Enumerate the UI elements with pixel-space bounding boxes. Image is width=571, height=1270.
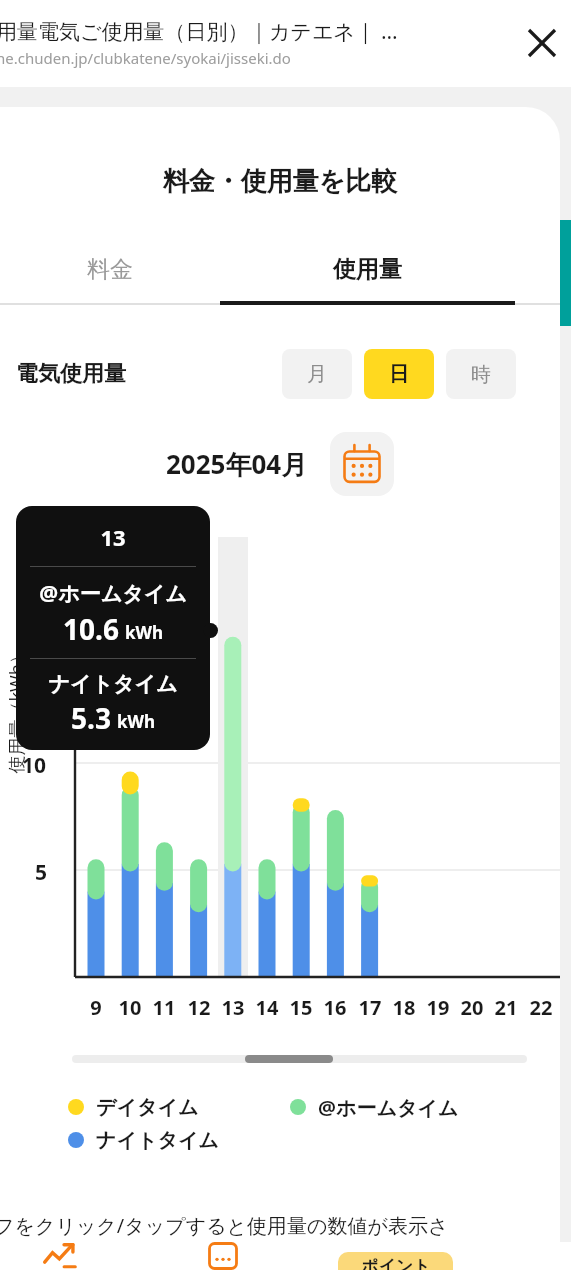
staticText: kWh [117, 710, 156, 733]
staticText: ne.chuden.jp/clubkatene/syokai/jisseki.d… [0, 48, 291, 68]
staticText: ポイント [361, 1256, 431, 1270]
staticText: 13 [219, 994, 247, 1021]
staticText: 15 [287, 994, 315, 1021]
staticText: 使用量（kWh） [3, 645, 28, 773]
staticText: ナイトタイム [96, 1128, 219, 1153]
staticText: 2025年04月 [166, 446, 308, 482]
staticText: 時 [471, 362, 491, 387]
staticText: 21 [492, 994, 520, 1021]
staticText: 13 [16, 522, 210, 552]
staticText: ナイトタイム [16, 671, 210, 697]
staticText: 9 [82, 994, 110, 1021]
staticText: kWh [125, 621, 164, 644]
button[interactable]: More [198, 1242, 248, 1270]
button[interactable]: ナイトタイム [68, 1125, 219, 1155]
button[interactable]: ポイント [338, 1252, 453, 1270]
button[interactable]: Side tab [558, 220, 571, 326]
button[interactable]: デイタイム [68, 1092, 199, 1122]
staticText: 14 [253, 994, 281, 1021]
staticText: 22 [527, 994, 555, 1021]
button[interactable]: Graph [20, 1242, 100, 1270]
staticText: 10 [116, 994, 144, 1021]
button[interactable]: Select date [330, 432, 394, 496]
staticText: フをクリック/タップすると使用量の数値が表示さ [0, 1212, 449, 1239]
staticText: @ホームタイム [16, 579, 210, 608]
staticText: 5.3 [71, 699, 111, 737]
staticText: 18 [390, 994, 418, 1021]
staticText: 5 [35, 858, 48, 887]
staticText: 17 [356, 994, 384, 1021]
staticText: 20 [458, 994, 486, 1021]
staticText: 用量電気ご使用量（日別）｜カテエネ｜ … [0, 17, 398, 46]
staticText: 16 [321, 994, 349, 1021]
button[interactable]: 日 [364, 349, 434, 399]
staticText: 10.6 [63, 610, 119, 648]
staticText: @ホームタイム [318, 1094, 459, 1121]
staticText: 月 [307, 362, 327, 387]
staticText: 11 [150, 994, 178, 1021]
staticText: 日 [389, 362, 409, 387]
staticText: 料金・使用量を比較 [0, 165, 560, 198]
button[interactable]: 料金 [0, 235, 220, 303]
staticText: 12 [185, 994, 213, 1021]
button[interactable]: 使用量 [220, 235, 515, 303]
staticText: 使用量 [333, 255, 402, 284]
staticText: 19 [424, 994, 452, 1021]
button[interactable]: 月 [282, 349, 352, 399]
staticText: デイタイム [96, 1095, 199, 1120]
staticText: 電気使用量 [16, 360, 126, 388]
button[interactable]: Close [513, 14, 571, 72]
button[interactable]: @ホームタイム [290, 1092, 459, 1122]
button[interactable]: 時 [446, 349, 516, 399]
staticText: 10 [22, 751, 47, 780]
staticText: 料金 [87, 255, 133, 284]
